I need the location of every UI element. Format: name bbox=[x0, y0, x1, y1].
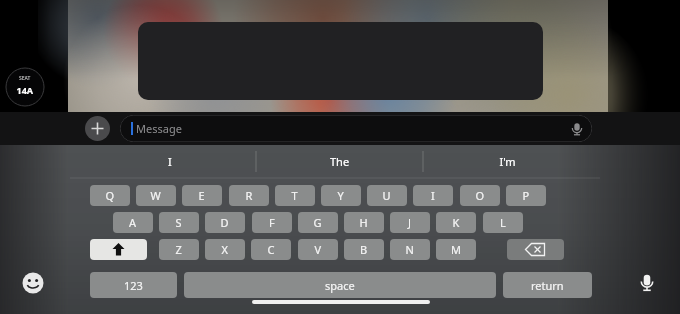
button[interactable] bbox=[321, 185, 361, 206]
button[interactable] bbox=[390, 212, 430, 233]
button[interactable]: Emoji bbox=[22, 272, 44, 294]
button[interactable] bbox=[205, 239, 245, 260]
button[interactable] bbox=[503, 272, 592, 298]
button[interactable] bbox=[205, 212, 245, 233]
button[interactable] bbox=[298, 212, 338, 233]
button[interactable]: Backspace bbox=[507, 239, 564, 260]
button[interactable] bbox=[436, 212, 476, 233]
button[interactable] bbox=[90, 272, 177, 298]
button[interactable] bbox=[344, 212, 384, 233]
button[interactable] bbox=[300, 147, 380, 175]
button[interactable] bbox=[229, 185, 269, 206]
button[interactable] bbox=[344, 239, 384, 260]
button[interactable] bbox=[367, 185, 407, 206]
button[interactable] bbox=[506, 185, 546, 206]
button[interactable] bbox=[436, 239, 476, 260]
button[interactable] bbox=[90, 185, 130, 206]
button[interactable] bbox=[159, 239, 199, 260]
button[interactable] bbox=[390, 239, 430, 260]
button[interactable] bbox=[468, 147, 548, 175]
button[interactable]: Dictate bbox=[568, 120, 586, 138]
button[interactable] bbox=[130, 147, 210, 175]
button[interactable] bbox=[413, 185, 453, 206]
button[interactable]: Shift bbox=[90, 239, 147, 260]
button[interactable] bbox=[136, 185, 176, 206]
button[interactable] bbox=[298, 239, 338, 260]
button[interactable] bbox=[460, 185, 500, 206]
button[interactable] bbox=[159, 212, 199, 233]
button[interactable] bbox=[182, 185, 222, 206]
button[interactable]: Add attachment bbox=[85, 116, 110, 141]
button[interactable] bbox=[252, 212, 292, 233]
button[interactable] bbox=[120, 115, 592, 142]
button[interactable] bbox=[113, 212, 153, 233]
button[interactable] bbox=[251, 239, 291, 260]
button[interactable] bbox=[483, 212, 523, 233]
button[interactable]: Dictation bbox=[636, 270, 658, 296]
button[interactable] bbox=[184, 272, 496, 298]
button[interactable] bbox=[275, 185, 315, 206]
